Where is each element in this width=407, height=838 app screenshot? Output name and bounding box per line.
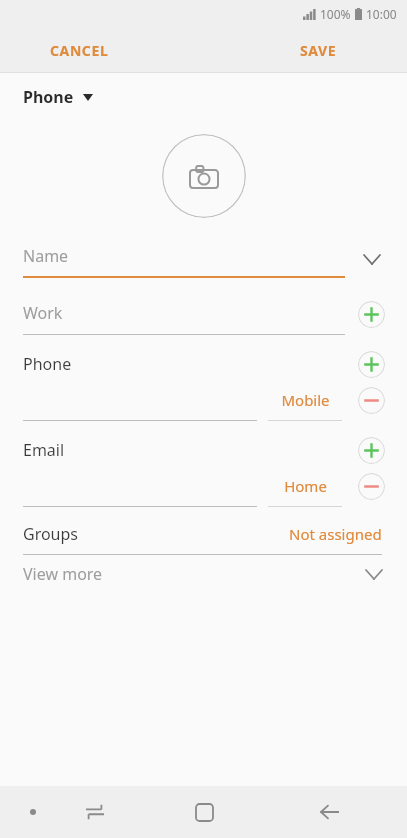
button[interactable]: Add: [358, 351, 385, 378]
staticText: Groups: [23, 523, 79, 545]
staticText: Not assigned: [289, 524, 382, 544]
button[interactable]: CANCEL: [40, 35, 119, 66]
staticText: Email: [23, 439, 65, 461]
button[interactable]: Back: [307, 790, 351, 834]
button[interactable]: Remove: [358, 387, 385, 414]
button[interactable]: Expand name: [355, 242, 389, 276]
button[interactable]: Menu indicator: [16, 795, 50, 829]
button[interactable]: Add: [358, 301, 385, 328]
button[interactable]: [23, 473, 257, 507]
staticText: Home: [284, 476, 327, 496]
staticText: 100%: [320, 6, 351, 22]
staticText: 10:00: [366, 6, 397, 22]
button[interactable]: SAVE: [290, 35, 347, 66]
button[interactable]: Phone: [0, 73, 407, 120]
button[interactable]: Remove: [358, 473, 385, 500]
button[interactable]: Home: [268, 471, 342, 507]
button[interactable]: View more: [0, 555, 407, 593]
button[interactable]: [0, 240, 407, 278]
staticText: View more: [23, 563, 103, 585]
staticText: Phone: [23, 353, 72, 375]
staticText: SAVE: [300, 41, 337, 60]
button[interactable]: Mobile: [268, 385, 342, 421]
button[interactable]: Groups: [0, 517, 407, 555]
staticText: Name: [23, 245, 69, 267]
button[interactable]: Recent apps: [73, 790, 117, 834]
staticText: Mobile: [281, 390, 330, 410]
button[interactable]: Add: [358, 437, 385, 464]
staticText: Phone: [23, 86, 74, 108]
staticText: CANCEL: [50, 41, 109, 60]
staticText: Work: [23, 302, 63, 324]
button[interactable]: [23, 387, 257, 421]
button[interactable]: [0, 297, 407, 335]
button[interactable]: Add photo: [162, 134, 246, 218]
button[interactable]: Home: [181, 789, 227, 835]
